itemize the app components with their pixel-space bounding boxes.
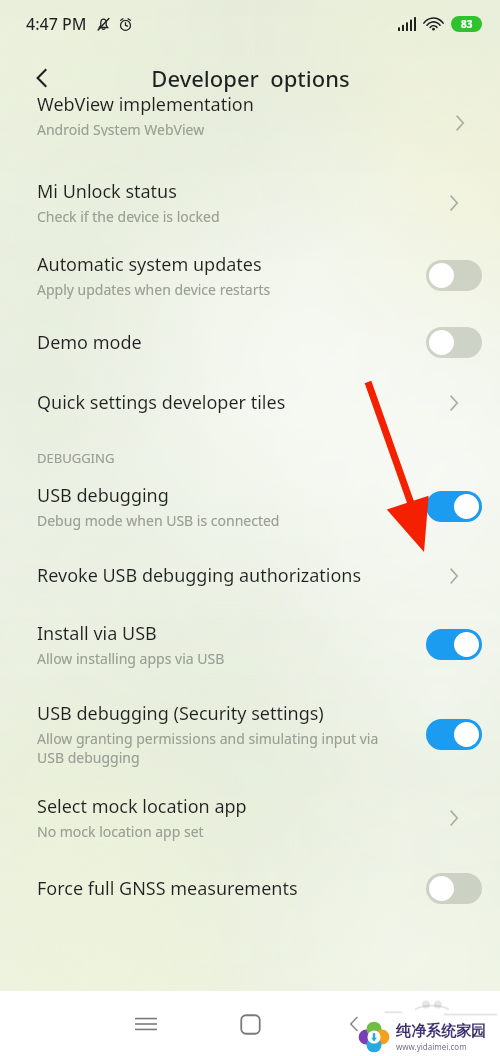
staticText: www.yidaimei.com	[396, 1041, 467, 1052]
staticText: Revoke USB debugging authorizations	[37, 563, 362, 588]
staticText: Check if the device is locked	[37, 207, 220, 226]
staticText: USB debugging	[37, 483, 169, 508]
staticText: Apply updates when device restarts	[37, 280, 271, 299]
button[interactable]: Toggle on	[426, 629, 482, 660]
button[interactable]: Force full GNSS measurements	[0, 843, 500, 906]
button[interactable]: Mi Unlock status	[0, 153, 500, 228]
staticText: WebView implementation	[37, 92, 254, 117]
staticText: No mock location app set	[37, 822, 204, 841]
staticText: DEBUGGING	[37, 449, 500, 467]
staticText: 83	[461, 17, 473, 31]
button[interactable]: Back	[18, 54, 66, 102]
button[interactable]: Back	[330, 1000, 378, 1048]
staticText: Debug mode when USB is connected	[37, 511, 280, 530]
button[interactable]: WebView implementation	[0, 109, 500, 153]
button[interactable]: Quick settings developer tiles	[0, 360, 500, 417]
button[interactable]: Toggle off	[426, 327, 482, 358]
staticText: 纯净系统家园	[396, 1022, 486, 1041]
button[interactable]: Demo mode	[0, 301, 500, 360]
button[interactable]: Automatic system updates	[0, 228, 500, 301]
staticText: 4:47 PM	[26, 13, 87, 35]
staticText: Demo mode	[37, 330, 142, 355]
button[interactable]: Toggle off	[426, 873, 482, 904]
staticText: USB debugging (Security settings)	[37, 701, 324, 726]
button[interactable]: Select mock location app	[0, 769, 500, 843]
button[interactable]: Home	[226, 1000, 274, 1048]
staticText: Automatic system updates	[37, 252, 262, 277]
button[interactable]: Install via USB	[0, 590, 500, 670]
button[interactable]: Toggle on	[426, 719, 482, 750]
staticText: Quick settings developer tiles	[37, 390, 286, 415]
button[interactable]: Revoke USB debugging authorizations	[0, 532, 500, 590]
button[interactable]: USB debugging	[0, 467, 500, 532]
button[interactable]: Toggle on	[426, 491, 482, 522]
staticText: Install via USB	[37, 621, 157, 646]
staticText: Force full GNSS measurements	[37, 876, 298, 901]
button[interactable]: USB debugging (Security settings)	[0, 670, 500, 769]
staticText: Select mock location app	[37, 794, 247, 819]
staticText: Android System WebView	[37, 120, 205, 136]
staticText: Allow granting permissions and simulatin…	[37, 729, 379, 767]
staticText: Mi Unlock status	[37, 179, 177, 204]
button[interactable]: Toggle off	[426, 260, 482, 291]
staticText: Allow installing apps via USB	[37, 649, 225, 668]
button[interactable]: Recents	[122, 1000, 170, 1048]
staticText: Developer options	[151, 63, 350, 93]
